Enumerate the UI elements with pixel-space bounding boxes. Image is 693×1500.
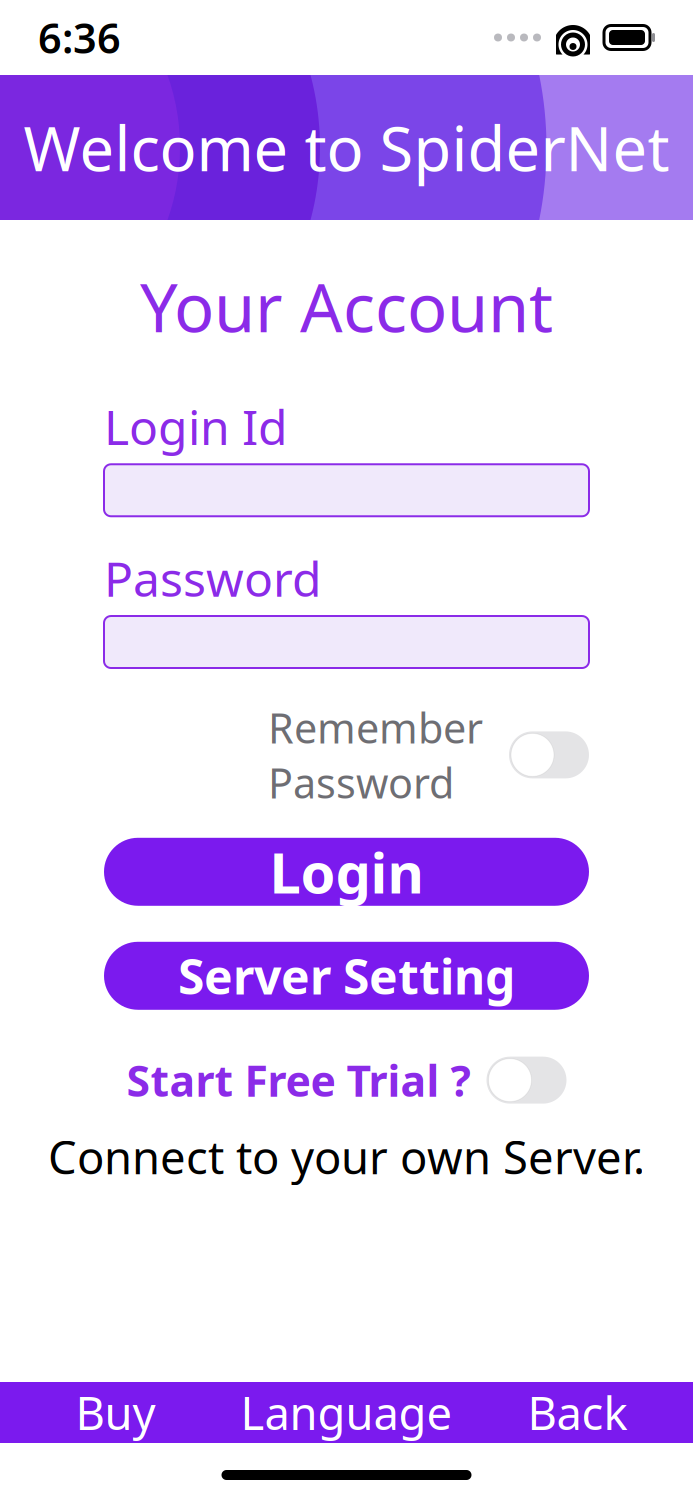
staticText: Login Id bbox=[104, 394, 288, 458]
button[interactable]: Remember Password bbox=[104, 694, 589, 816]
staticText: Login bbox=[269, 835, 423, 909]
staticText: Start Free Trial ? bbox=[126, 1052, 470, 1108]
staticText: Back bbox=[527, 1382, 627, 1443]
button[interactable]: Back bbox=[462, 1382, 693, 1443]
staticText: 6:36 bbox=[38, 10, 121, 65]
staticText: Remember Password bbox=[268, 700, 483, 810]
staticText: Your Account bbox=[140, 262, 553, 350]
staticText: Language bbox=[240, 1382, 452, 1443]
button[interactable]: Start Free Trial ? bbox=[126, 1048, 566, 1112]
button[interactable]: Login bbox=[104, 838, 589, 906]
staticText: Connect to your own Server. bbox=[48, 1126, 645, 1187]
staticText: Server Setting bbox=[178, 944, 515, 1008]
staticText: Welcome to SpiderNet bbox=[23, 107, 669, 188]
button[interactable]: Buy bbox=[0, 1382, 231, 1443]
staticText: Password bbox=[104, 546, 322, 610]
button[interactable]: Language bbox=[231, 1382, 462, 1443]
staticText: Buy bbox=[75, 1382, 155, 1443]
button[interactable]: Server Setting bbox=[104, 942, 589, 1010]
